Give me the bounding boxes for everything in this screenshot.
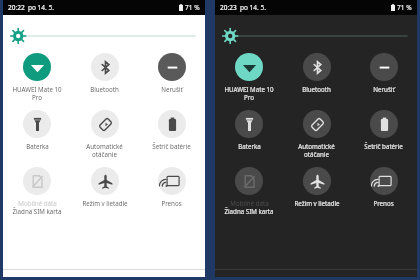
staticText: Režim v lietadle [82,199,128,207]
staticText: HUAWEI Mate 10 [224,85,274,93]
staticText: 20:23 [220,3,237,12]
button[interactable]: Prenos [138,167,205,207]
button[interactable]: Nerušiť [350,53,417,93]
other: Šetrič batérie [158,110,186,138]
staticText: Prenos [161,199,182,207]
button[interactable]: Bluetooth [71,53,138,93]
button[interactable]: Brightness [13,28,195,44]
button[interactable]: Baterka [3,110,71,150]
button[interactable]: Baterka [215,110,283,150]
other: Nerušiť [370,53,398,81]
staticText: 71 % [185,3,200,12]
other: Bluetooth [303,53,331,81]
staticText: Automatické [298,142,335,150]
staticText: Šetrič batérie [152,142,191,150]
other: Bluetooth [91,53,119,81]
staticText: Bluetooth [302,85,331,93]
other: Režim v lietadle [303,167,331,195]
button[interactable]: Režim v lietadle [283,167,350,207]
button[interactable]: Režim v lietadle [71,167,138,207]
staticText: po 14. 5. [28,3,54,12]
staticText: Nerušiť [373,85,395,93]
staticText: 20:22 [8,3,25,12]
button[interactable]: Automatické otáčanie [71,110,138,158]
button[interactable]: Automatické otáčanie [283,110,350,158]
button[interactable]: Šetrič batérie [138,110,205,150]
button[interactable]: Bluetooth [283,53,350,93]
other: Prenos [370,167,398,195]
staticText: Žiadna SIM karta [12,207,62,215]
button[interactable]: Mobilné dáta Žiadna SIM karta [215,167,283,215]
staticText: Bluetooth [90,85,119,93]
button[interactable]: Šetrič batérie [350,110,417,150]
staticText: 71 % [397,3,412,12]
staticText: Žiadna SIM karta [224,207,274,215]
button[interactable]: Mobilné dáta Žiadna SIM karta [3,167,71,215]
staticText: Prenos [373,199,394,207]
staticText: Pro [244,93,254,101]
staticText: po 14. 5. [240,3,266,12]
other: Mobilné dáta Žiadna SIM karta [23,167,51,195]
other: HUAWEI Mate 10 Pro [23,53,51,81]
staticText: Baterka [238,142,261,150]
button[interactable]: HUAWEI Mate 10 Pro [3,53,71,101]
staticText: otáčanie [304,150,329,158]
other: Šetrič batérie [370,110,398,138]
other: Prenos [158,167,186,195]
staticText: Automatické [86,142,123,150]
button[interactable]: Brightness [225,28,407,44]
other: HUAWEI Mate 10 Pro [235,53,263,81]
other: Automatické otáčanie [303,110,331,138]
staticText: Baterka [26,142,49,150]
staticText: HUAWEI Mate 10 [12,85,62,93]
staticText: otáčanie [92,150,117,158]
button[interactable]: Prenos [350,167,417,207]
staticText: Šetrič batérie [364,142,403,150]
other: Režim v lietadle [91,167,119,195]
staticText: Mobilné dáta [230,199,269,207]
button[interactable]: Nerušiť [138,53,205,93]
staticText: Nerušiť [161,85,183,93]
button[interactable]: HUAWEI Mate 10 Pro [215,53,283,101]
other: Nerušiť [158,53,186,81]
other: Mobilné dáta Žiadna SIM karta [235,167,263,195]
other: Automatické otáčanie [91,110,119,138]
other: Baterka [23,110,51,138]
staticText: Pro [32,93,42,101]
other: Baterka [235,110,263,138]
staticText: Mobilné dáta [18,199,57,207]
staticText: Režim v lietadle [294,199,340,207]
